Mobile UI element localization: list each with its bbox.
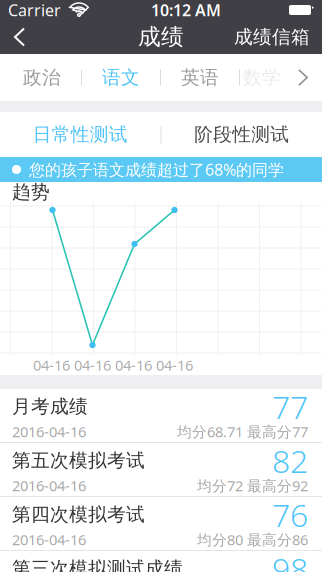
button[interactable]: 第五次模拟考试 [0, 443, 322, 497]
button[interactable]: 成绩信箱 [222, 18, 322, 55]
staticText: 语文 [102, 66, 140, 89]
staticText: 04-16 [115, 355, 152, 375]
staticText: 阶段性测试 [194, 123, 289, 146]
button[interactable]: 第四次模拟考试 [0, 497, 322, 551]
staticText: 第四次模拟考试 [12, 503, 145, 526]
button[interactable]: 阶段性测试 [161, 112, 322, 157]
staticText: 均分80 最高分86 [197, 530, 308, 549]
staticText: 76 [272, 493, 308, 536]
staticText: 您的孩子语文成绩超过了68%的同学 [29, 159, 284, 180]
button[interactable]: More subjects [284, 57, 322, 97]
staticText: 日常性测试 [33, 123, 128, 146]
staticText: 英语 [181, 66, 219, 89]
staticText: 第五次模拟考试 [12, 449, 145, 472]
staticText: 10:12 AM [151, 0, 221, 21]
staticText: 04-16 [33, 355, 70, 375]
staticText: 04-16 [74, 355, 111, 375]
button[interactable]: 日常性测试 [0, 112, 160, 157]
button[interactable]: 数学 [240, 55, 284, 99]
staticText: 数学 [243, 66, 281, 89]
staticText: 2016-04-16 [12, 422, 86, 441]
staticText: 趋势 [12, 180, 50, 203]
staticText: 04-16 [156, 355, 193, 375]
staticText: 第三次模拟测试成绩 [12, 557, 183, 572]
button[interactable]: 政治 [3, 55, 81, 99]
staticText: 成绩信箱 [234, 25, 310, 48]
staticText: 政治 [23, 66, 61, 89]
staticText: 2016-04-16 [12, 530, 86, 549]
staticText: 均分72 最高分92 [197, 476, 308, 495]
button[interactable]: 月考成绩 [0, 389, 322, 443]
staticText: 均分68.71 最高分77 [177, 422, 308, 441]
staticText: 77 [272, 385, 308, 428]
button[interactable]: 第三次模拟测试成绩 [0, 551, 322, 572]
button[interactable]: 语文 [82, 55, 160, 99]
staticText: 82 [272, 439, 308, 482]
staticText: 成绩 [138, 23, 184, 51]
button[interactable]: Back [0, 20, 39, 53]
staticText: 98 [272, 547, 308, 572]
staticText: 2016-04-16 [12, 476, 86, 495]
staticText: 月考成绩 [12, 395, 88, 418]
staticText: Carrier [8, 0, 61, 21]
button[interactable]: 英语 [161, 55, 239, 99]
